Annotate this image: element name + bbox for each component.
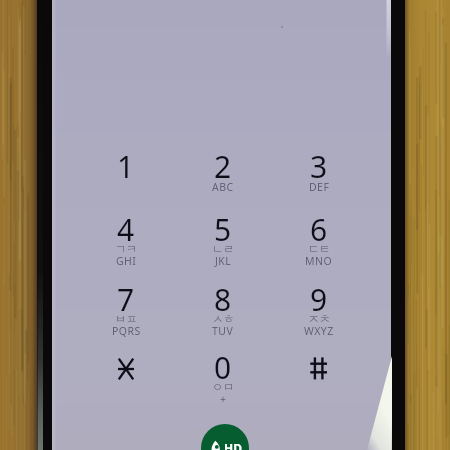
- button[interactable]: 2: [175, 143, 271, 211]
- staticText: JKL: [215, 254, 232, 268]
- staticText: ㄷㅌ: [308, 242, 331, 256]
- button[interactable]: 8: [175, 276, 271, 344]
- staticText: 2: [214, 146, 232, 187]
- staticText: GHI: [116, 254, 137, 268]
- staticText: ㅅㅎ: [212, 312, 235, 326]
- button[interactable]: 7: [78, 276, 174, 344]
- button[interactable]: 9: [271, 276, 367, 344]
- staticText: 1: [117, 146, 135, 187]
- staticText: TUV: [212, 324, 234, 338]
- staticText: 0: [214, 347, 232, 388]
- staticText: 4: [117, 209, 135, 250]
- staticText: 6: [310, 209, 328, 250]
- staticText: 7: [117, 279, 135, 320]
- staticText: ㄴㄹ: [212, 242, 235, 256]
- staticText: +: [220, 392, 227, 406]
- staticText: ㅈㅊ: [308, 312, 331, 326]
- staticText: ㅂㅍ: [115, 312, 138, 326]
- button[interactable]: 0: [175, 344, 271, 412]
- staticText: MNO: [305, 254, 333, 268]
- staticText: ㄱㅋ: [115, 242, 138, 256]
- button[interactable]: Call: [201, 424, 249, 450]
- button[interactable]: 4: [78, 206, 174, 274]
- button[interactable]: 1: [78, 143, 174, 211]
- staticText: ABC: [212, 180, 234, 194]
- button[interactable]: [78, 344, 174, 412]
- staticText: ㅇㅁ: [212, 380, 235, 394]
- staticText: 9: [310, 279, 328, 320]
- staticText: 8: [214, 279, 232, 320]
- button[interactable]: 6: [271, 206, 367, 274]
- button[interactable]: 3: [271, 143, 367, 211]
- staticText: DEF: [309, 180, 330, 194]
- button[interactable]: 5: [175, 206, 271, 274]
- staticText: 3: [310, 146, 328, 187]
- staticText: WXYZ: [304, 324, 334, 338]
- staticText: 5: [214, 209, 232, 250]
- staticText: HD: [224, 440, 242, 450]
- button[interactable]: [271, 344, 367, 412]
- staticText: PQRS: [112, 324, 141, 338]
